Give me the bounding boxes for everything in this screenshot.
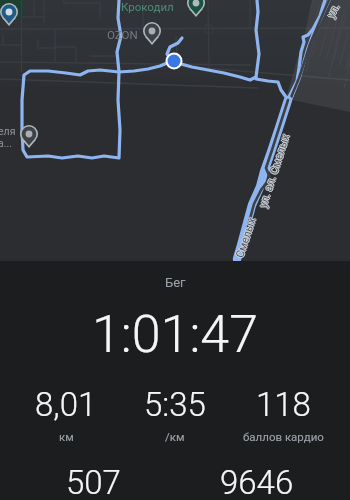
staticText: OZON [107,28,138,41]
staticText: ул. [325,1,344,20]
staticText: 118 [256,385,311,424]
staticText: км [59,430,74,443]
staticText: ул. ал. Смелых [256,131,293,208]
staticText: 1:01:47 [92,304,259,353]
staticText: Смелых [232,215,258,259]
staticText: ул. [323,1,342,20]
staticText: 5:35 [144,385,206,424]
staticText: ул. ал. Смелых [256,133,293,210]
button[interactable]: 118 [229,385,338,443]
staticText: 8,01 [35,385,97,424]
staticText: ул. ал. Смелых [257,132,294,209]
staticText: ул. [324,1,343,20]
staticText: Смелых [233,214,259,258]
staticText: ул. ал. Смелых [256,132,293,209]
button[interactable]: Map of the run route [0,0,350,261]
staticText: Смелых [233,216,259,260]
staticText: 507 [66,463,121,500]
staticText: 9646 [220,463,294,500]
button[interactable]: 8,01 [12,385,120,443]
staticText: баллов кардио [243,430,324,443]
staticText: еля [0,125,16,137]
staticText: Смелых [233,215,259,259]
staticText: а... [0,137,13,149]
staticText: ул. [324,2,343,21]
staticText: Смелых [234,215,260,259]
staticText: /км [165,430,185,443]
staticText: Бег [165,275,186,290]
button[interactable]: 507 [12,463,175,500]
button[interactable]: 5:35 [120,385,229,443]
staticText: ул. ал. Смелых [255,132,292,209]
button[interactable]: 9646 [175,463,338,500]
staticText: ул. [324,0,343,19]
staticText: Крокодил [121,0,174,13]
